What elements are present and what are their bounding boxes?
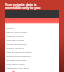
staticText: Web & App Activity: [6, 30, 28, 33]
button[interactable]: Shared endorsements: [5, 53, 59, 57]
button[interactable]: Location History: [5, 33, 59, 37]
staticText: Privacy: [6, 26, 14, 29]
staticText: Shared endorsements: [6, 54, 31, 57]
button[interactable]: Download your data: [5, 65, 59, 69]
button[interactable]: Privacy: [5, 25, 59, 29]
button[interactable]: Ad personalisation: [5, 41, 59, 45]
staticText: Manage your data: [6, 58, 27, 61]
button[interactable]: Manage your data: [5, 57, 59, 61]
staticText: Your private data is accessible only to …: [5, 2, 41, 10]
staticText: Download your data: [6, 66, 29, 69]
button[interactable]: YouTube History: [5, 37, 59, 41]
staticText: YouTube History: [6, 38, 25, 41]
staticText: Third-party apps: [6, 62, 25, 65]
button[interactable]: Third-party apps: [5, 61, 59, 65]
button[interactable]: Web & App Activity: [5, 29, 59, 33]
staticText: Ad personalisation: [6, 42, 27, 45]
staticText: Location History: [6, 34, 25, 37]
staticText: Activity controls: [6, 46, 24, 49]
button[interactable]: Data & personalisation: [5, 49, 59, 53]
button[interactable]: Activity controls: [5, 45, 59, 49]
staticText: Data & personalisation: [6, 50, 32, 53]
